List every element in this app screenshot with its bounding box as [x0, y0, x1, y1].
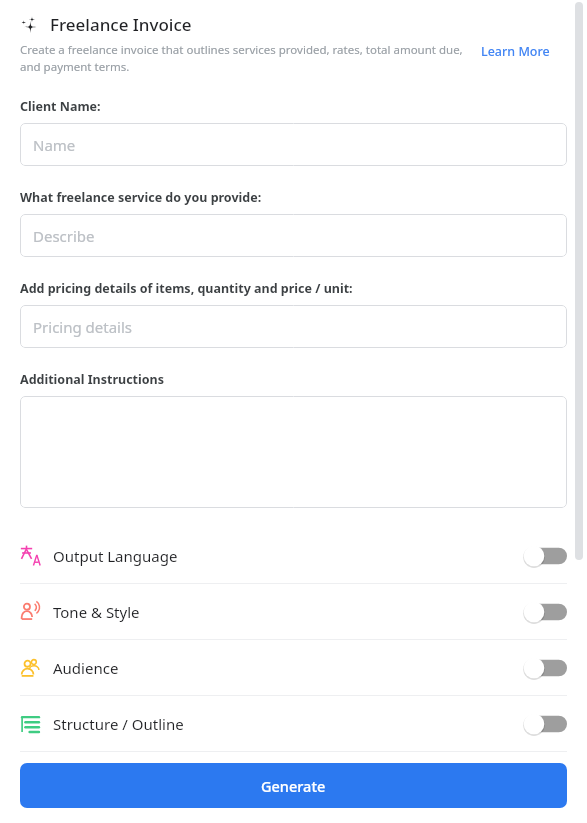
- button[interactable]: Tone & Style: [0, 584, 587, 639]
- staticText: Pricing details: [33, 317, 133, 337]
- staticText: Output Language: [53, 546, 178, 566]
- staticText: Create a freelance invoice that outlines…: [20, 42, 475, 74]
- staticText: Learn More: [481, 43, 550, 60]
- staticText: Tone & Style: [53, 602, 140, 622]
- staticText: What freelance service do you provide:: [20, 189, 262, 206]
- staticText: Freelance Invoice: [50, 13, 192, 36]
- staticText: Client Name:: [20, 98, 101, 115]
- button[interactable]: Generate: [20, 763, 567, 808]
- staticText: Additional Instructions: [20, 371, 164, 388]
- button[interactable]: Describe: [20, 214, 567, 257]
- staticText: Name: [33, 135, 76, 155]
- button[interactable]: Toggle Tone & Style: [523, 601, 567, 623]
- button[interactable]: Audience: [0, 640, 587, 695]
- staticText: Add pricing details of items, quantity a…: [20, 280, 353, 297]
- button[interactable]: Name: [20, 123, 567, 166]
- button[interactable]: Toggle Audience: [523, 657, 567, 679]
- button[interactable]: Learn More: [479, 42, 552, 61]
- staticText: Audience: [53, 658, 119, 678]
- button[interactable]: Toggle Structure / Outline: [523, 713, 567, 735]
- staticText: Describe: [33, 226, 95, 246]
- button[interactable]: [20, 396, 567, 508]
- button[interactable]: Toggle Output Language: [523, 545, 567, 567]
- button[interactable]: Pricing details: [20, 305, 567, 348]
- staticText: Structure / Outline: [53, 714, 184, 734]
- staticText: Generate: [261, 776, 326, 796]
- button[interactable]: Structure / Outline: [0, 696, 587, 751]
- button[interactable]: Output Language: [0, 528, 587, 583]
